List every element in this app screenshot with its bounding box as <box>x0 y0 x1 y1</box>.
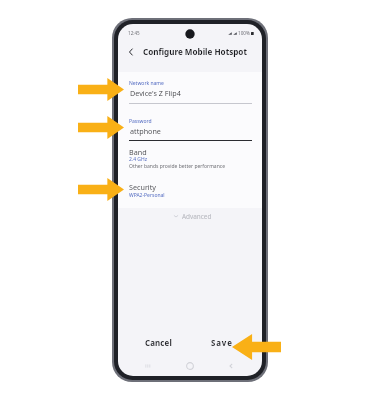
button[interactable]: Back <box>125 46 137 58</box>
staticText: Save <box>211 338 233 349</box>
button[interactable]: Back <box>221 359 241 373</box>
staticText: Cancel <box>145 338 172 349</box>
staticText: 12:45 <box>128 30 140 36</box>
staticText: 100% <box>238 30 250 36</box>
staticText: Configure Mobile Hotspot <box>143 46 247 57</box>
staticText: attphone <box>130 126 161 136</box>
staticText: 2.4 GHz <box>129 156 148 163</box>
staticText: Device's Z Flip4 <box>130 88 181 98</box>
staticText: Advanced <box>182 212 212 221</box>
staticText: WPA2-Personal <box>129 192 165 199</box>
staticText: Security <box>129 182 156 192</box>
button[interactable]: Network name <box>118 75 262 108</box>
button[interactable]: Save <box>190 334 262 352</box>
button[interactable]: Cancel <box>118 334 190 352</box>
button[interactable]: Advanced <box>118 209 262 223</box>
button[interactable]: Password <box>118 113 262 146</box>
staticText: Password <box>129 118 152 125</box>
staticText: Network name <box>129 80 164 87</box>
button[interactable]: Band <box>118 145 262 175</box>
staticText: Band <box>129 147 147 157</box>
button[interactable]: Security <box>118 180 262 204</box>
staticText: Other bands provide better performance <box>129 163 225 170</box>
button[interactable]: Home <box>180 359 200 373</box>
